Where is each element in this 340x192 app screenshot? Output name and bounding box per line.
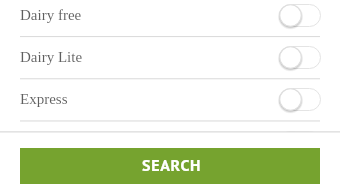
button[interactable]: Express [0,84,340,126]
button[interactable]: SEARCH [20,148,320,184]
button[interactable]: Toggle Express [279,88,321,111]
staticText: SEARCH [142,155,202,176]
button[interactable]: Dairy Lite [0,42,340,84]
button[interactable]: Dairy free [0,0,340,42]
button[interactable]: Toggle Dairy free [279,4,321,27]
button[interactable]: Toggle Dairy Lite [279,46,321,69]
staticText: Dairy free [20,7,82,24]
staticText: Express [20,91,68,108]
staticText: Dairy Lite [20,49,83,66]
